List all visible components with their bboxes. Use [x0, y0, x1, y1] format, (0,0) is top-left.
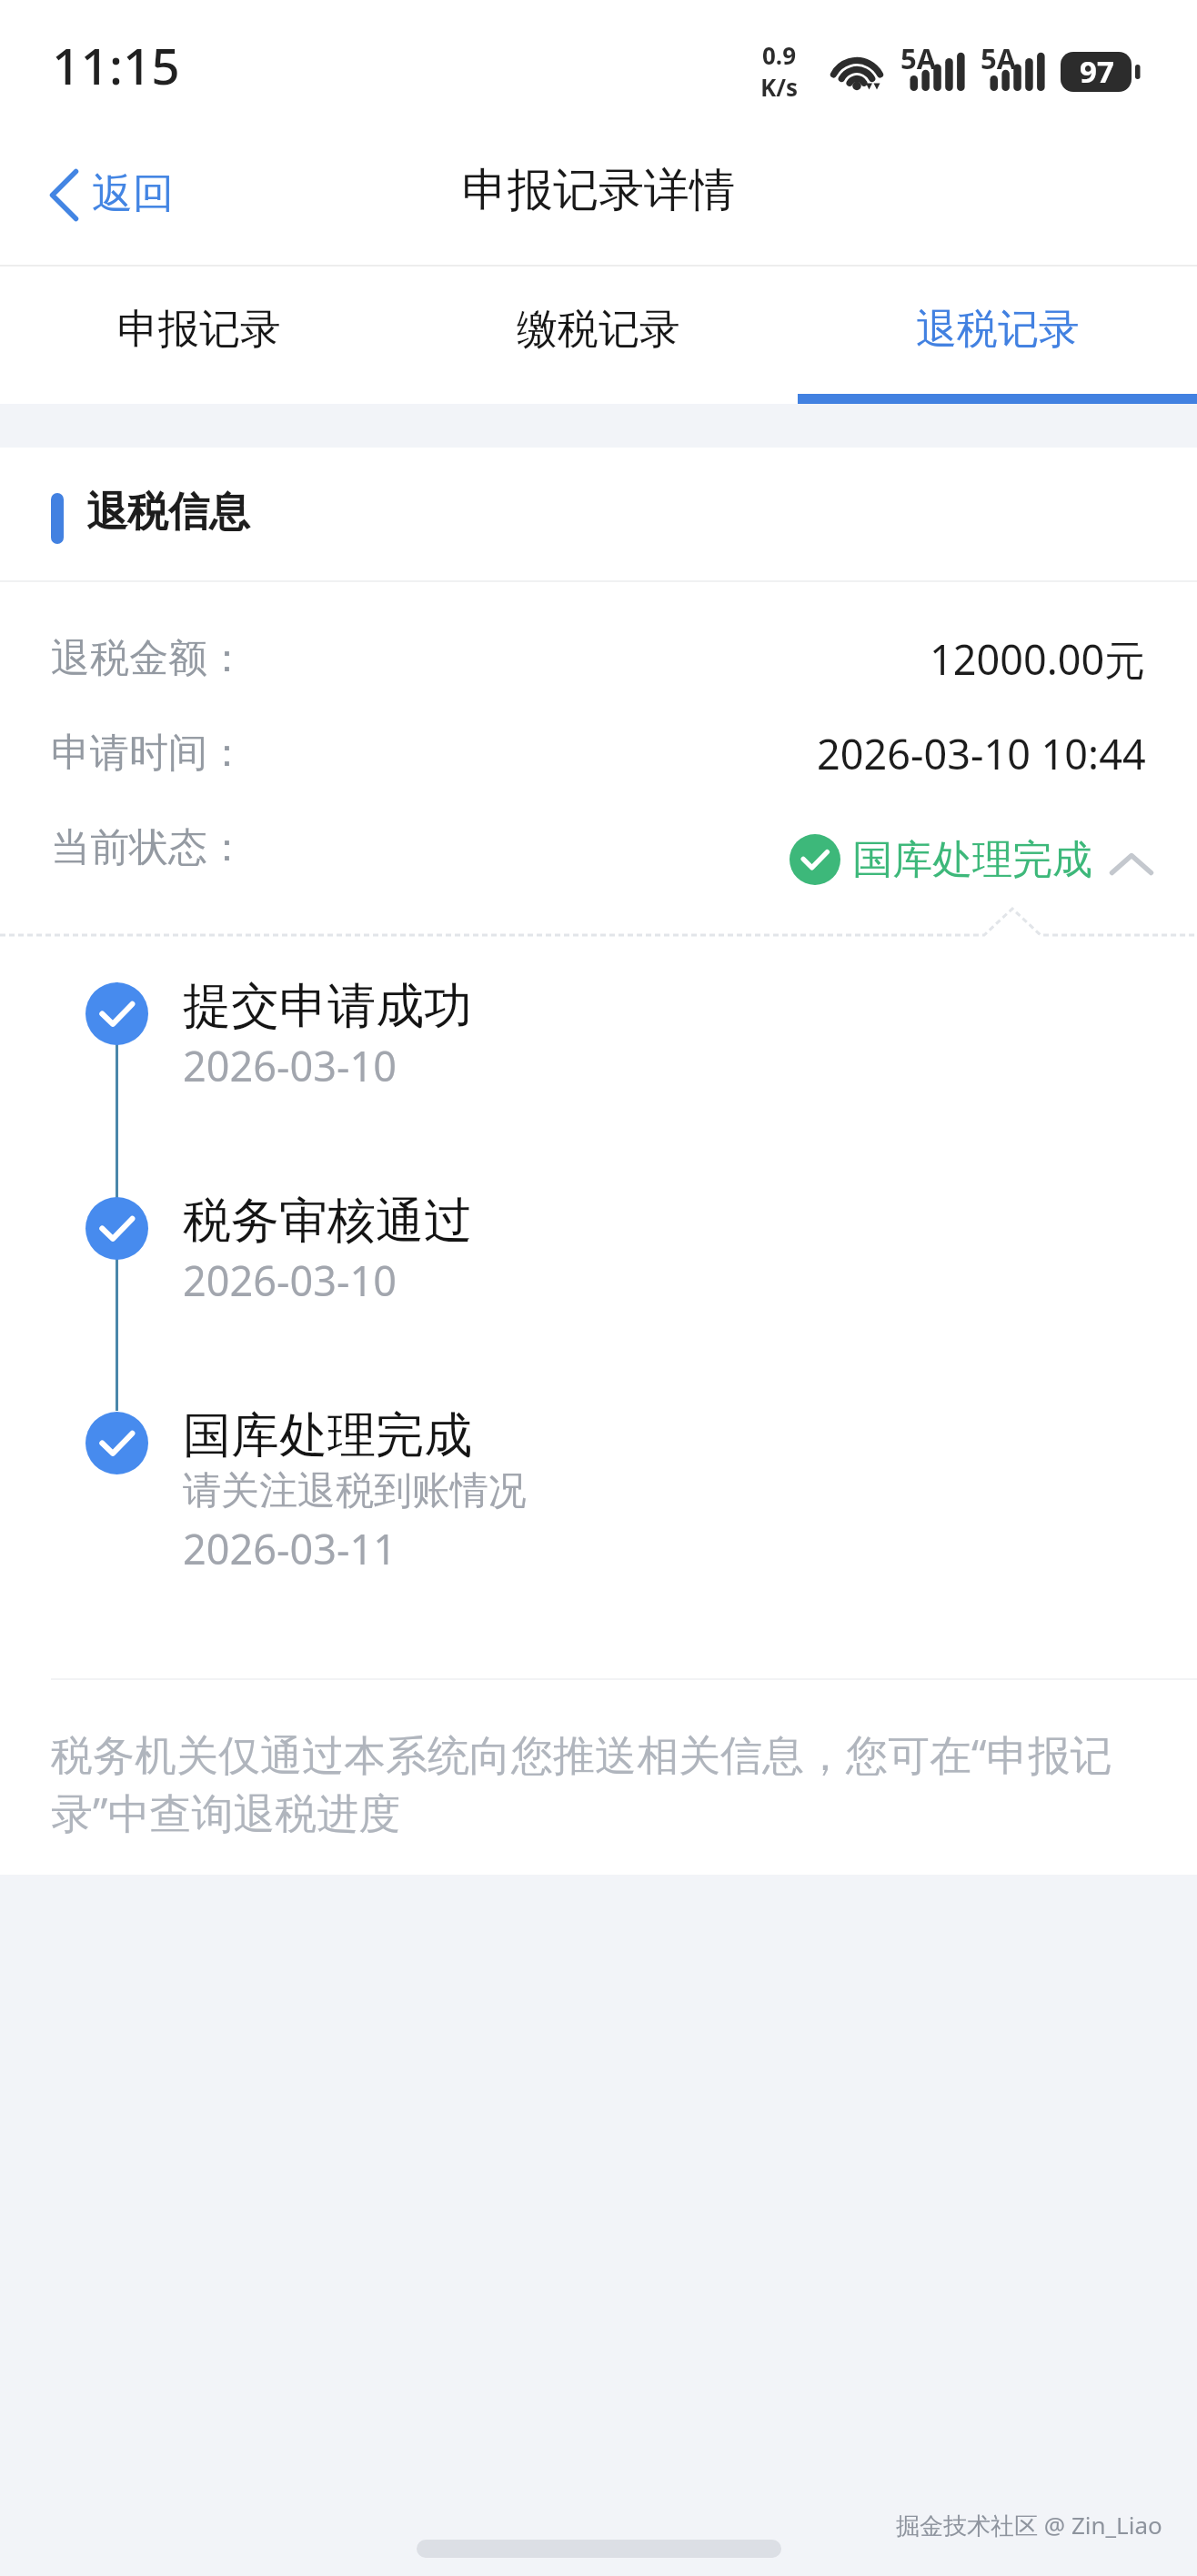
staticText: 税务机关仅通过本系统向您推送相关信息，您可在“申报记录”中查询退税进度	[51, 1726, 1146, 1841]
staticText: 申报记录	[117, 304, 281, 356]
staticText: 申请时间：	[51, 729, 246, 778]
staticText: K/s	[760, 71, 799, 103]
staticText: 2026-03-10 10:44	[817, 726, 1146, 781]
staticText: 请关注退税到账情况	[183, 1467, 527, 1515]
staticText: 2026-03-10	[183, 1038, 397, 1093]
staticText: 97	[1080, 51, 1114, 92]
staticText: 5A	[900, 39, 937, 77]
button[interactable]: 退税记录	[798, 267, 1197, 404]
button[interactable]: 申报记录	[0, 267, 398, 404]
other: Collapse	[1110, 853, 1153, 875]
staticText: 退税记录	[916, 304, 1080, 356]
button[interactable]: 缴税记录	[398, 267, 798, 404]
staticText: 当前状态：	[51, 823, 246, 872]
staticText: 提交申请成功	[183, 976, 472, 1037]
button[interactable]: 税务审核通过	[183, 1191, 472, 1308]
staticText: 掘金技术社区 @ Zin_Liao	[896, 2509, 1162, 2541]
staticText: 申报记录详情	[462, 162, 735, 219]
staticText: 5A	[981, 39, 1017, 77]
staticText: 11:15	[52, 31, 180, 99]
staticText: 返回	[92, 168, 174, 220]
staticText: 缴税记录	[517, 304, 680, 356]
staticText: 退税金额：	[51, 634, 246, 683]
button[interactable]: 提交申请成功	[183, 976, 472, 1093]
button[interactable]: 国库处理完成	[790, 834, 1153, 885]
staticText: 2026-03-11	[183, 1521, 397, 1576]
button[interactable]: Back	[34, 154, 190, 238]
staticText: 退税信息	[86, 487, 250, 538]
staticText: 2026-03-10	[183, 1253, 397, 1308]
button[interactable]: 国库处理完成	[183, 1405, 527, 1576]
staticText: 国库处理完成	[183, 1405, 472, 1466]
staticText: 税务审核通过	[183, 1191, 472, 1252]
staticText: 国库处理完成	[852, 835, 1092, 885]
staticText: 0.9	[762, 39, 797, 71]
other: Back	[50, 169, 78, 221]
staticText: 12000.00元	[930, 631, 1146, 687]
